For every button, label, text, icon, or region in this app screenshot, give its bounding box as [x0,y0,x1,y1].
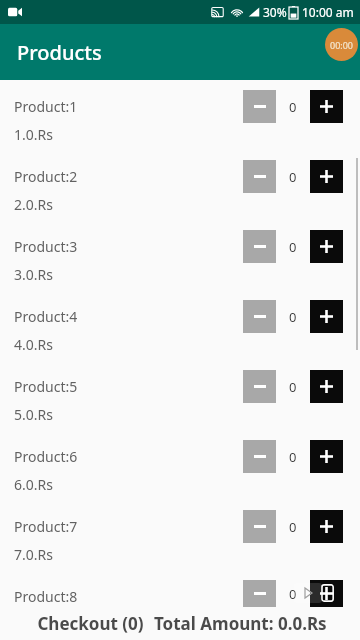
staticText: Product:2 [14,167,78,186]
button[interactable]: Decrease quantity of Product:6 [243,440,276,473]
button[interactable]: Stop recording [322,584,340,602]
button[interactable]: Decrease quantity of Product:7 [243,510,276,543]
staticText: Product:1 [14,97,78,116]
button[interactable]: Decrease quantity of Product:8 [243,580,276,607]
button[interactable]: Decrease quantity of Product:1 [243,90,276,123]
staticText: Checkout (0) [37,612,144,635]
staticText: Product:3 [14,237,78,256]
button[interactable]: Recording timer [325,28,358,61]
button[interactable]: Product:2 [0,150,360,220]
button[interactable]: Increase quantity of Product:7 [310,510,343,543]
staticText: Product:6 [14,447,78,466]
staticText: 30% [263,4,287,20]
button[interactable]: Decrease quantity of Product:4 [243,300,276,333]
button[interactable]: Decrease quantity of Product:2 [243,160,276,193]
staticText: 7.0.Rs [14,545,53,564]
button[interactable]: Product:1 [0,80,360,150]
button[interactable]: Increase quantity of Product:2 [310,160,343,193]
staticText: 1.0.Rs [14,125,53,144]
staticText: 2.0.Rs [14,195,53,214]
staticText: Total Amount: 0.0.Rs [154,612,327,635]
staticText: 0 [289,448,297,466]
button[interactable]: Increase quantity of Product:4 [310,300,343,333]
button[interactable]: Product:6 [0,430,360,500]
staticText: Product:7 [14,517,78,536]
button[interactable]: Product:8 [0,570,360,607]
staticText: 4.0.Rs [14,335,53,354]
button[interactable]: Decrease quantity of Product:5 [243,370,276,403]
staticText: 10:00 am [302,4,354,20]
staticText: 0 [289,308,297,326]
button[interactable]: Increase quantity of Product:1 [310,90,343,123]
button[interactable]: Recorder play [294,583,322,603]
button[interactable]: Product:5 [0,360,360,430]
staticText: 5.0.Rs [14,405,53,424]
staticText: 0 [289,585,297,603]
button[interactable]: Product:7 [0,500,360,570]
staticText: 0 [289,98,297,116]
staticText: 6.0.Rs [14,475,53,494]
staticText: Product:4 [14,307,78,326]
staticText: 0 [289,518,297,536]
button[interactable]: Decrease quantity of Product:3 [243,230,276,263]
staticText: 0 [289,238,297,256]
staticText: Product:8 [14,587,78,606]
button[interactable]: Increase quantity of Product:8 [310,580,343,607]
staticText: 0 [289,378,297,396]
staticText: 0 [289,168,297,186]
button[interactable]: Increase quantity of Product:3 [310,230,343,263]
staticText: Products [17,39,102,66]
staticText: Product:5 [14,377,78,396]
button[interactable]: Product:3 [0,220,360,290]
button[interactable]: Increase quantity of Product:5 [310,370,343,403]
button[interactable]: Increase quantity of Product:6 [310,440,343,473]
button[interactable]: Checkout [33,610,148,637]
staticText: 3.0.Rs [14,265,53,284]
button[interactable]: Product:4 [0,290,360,360]
staticText: 00:00 [330,39,354,51]
